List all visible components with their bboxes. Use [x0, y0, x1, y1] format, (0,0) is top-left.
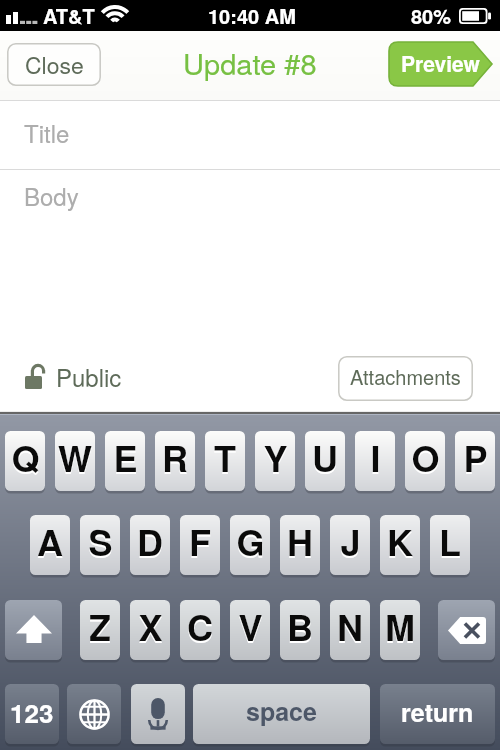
button[interactable]: Dictate — [131, 684, 185, 744]
button[interactable]: R — [155, 431, 195, 491]
staticText: 123 — [10, 694, 54, 731]
button[interactable]: H — [280, 515, 320, 575]
staticText: H — [287, 517, 313, 569]
staticText: D — [137, 517, 163, 569]
button[interactable]: S — [80, 515, 120, 575]
button[interactable]: M — [380, 600, 420, 660]
button[interactable]: Public — [25, 360, 122, 394]
button[interactable]: I — [355, 431, 395, 491]
staticText: Z — [89, 600, 111, 652]
staticText: B — [287, 602, 313, 654]
staticText: T — [214, 433, 236, 485]
staticText: 80% — [411, 1, 452, 30]
staticText: T — [214, 431, 236, 483]
staticText: J — [340, 517, 361, 569]
staticText: J — [340, 515, 361, 567]
staticText: C — [187, 600, 213, 652]
button[interactable]: U — [305, 431, 345, 491]
button[interactable]: Preview — [389, 42, 492, 86]
button[interactable]: Z — [80, 600, 120, 660]
staticText: AT&T — [43, 1, 95, 30]
staticText: O — [411, 433, 440, 485]
staticText: S — [88, 515, 113, 567]
staticText: Public — [56, 359, 122, 393]
staticText: Z — [89, 602, 111, 654]
staticText: Body — [24, 178, 79, 212]
staticText: E — [113, 431, 138, 483]
staticText: L — [439, 515, 461, 567]
staticText: Attachments — [350, 362, 461, 391]
staticText: U — [312, 431, 338, 483]
staticText: W — [58, 433, 92, 485]
button[interactable]: W — [55, 431, 95, 491]
staticText: R — [162, 431, 188, 483]
staticText: F — [189, 515, 211, 567]
staticText: S — [88, 517, 113, 569]
staticText: V — [238, 600, 263, 652]
button[interactable]: C — [180, 600, 220, 660]
staticText: N — [337, 600, 363, 652]
staticText: 10:40 AM — [208, 1, 296, 30]
staticText: C — [187, 602, 213, 654]
staticText: O — [411, 431, 440, 483]
button[interactable]: E — [105, 431, 145, 491]
staticText: Q — [11, 431, 40, 483]
staticText: P — [463, 431, 488, 483]
button[interactable]: Backspace — [438, 600, 495, 660]
staticText: V — [238, 602, 263, 654]
staticText: W — [58, 431, 92, 483]
button[interactable]: N — [330, 600, 370, 660]
staticText: space — [246, 693, 317, 729]
staticText: L — [439, 517, 461, 569]
button[interactable]: O — [405, 431, 445, 491]
staticText: H — [287, 515, 313, 567]
staticText: Close — [25, 48, 84, 81]
staticText: P — [463, 433, 488, 485]
button[interactable]: B — [280, 600, 320, 660]
button[interactable]: space — [193, 684, 370, 744]
button[interactable]: A — [30, 515, 70, 575]
staticText: Q — [11, 433, 40, 485]
other: Public — [25, 365, 47, 389]
button[interactable]: Change keyboard — [67, 684, 121, 744]
staticText: X — [138, 602, 163, 654]
button[interactable]: D — [130, 515, 170, 575]
button[interactable]: Shift — [5, 600, 62, 660]
staticText: M — [385, 600, 415, 652]
button[interactable]: F — [180, 515, 220, 575]
staticText: I — [370, 433, 381, 485]
button[interactable]: Close — [7, 43, 101, 86]
staticText: B — [287, 600, 313, 652]
staticText: Y — [263, 433, 288, 485]
staticText: G — [236, 517, 265, 569]
staticText: F — [189, 517, 211, 569]
staticText: E — [113, 433, 138, 485]
staticText: K — [387, 517, 413, 569]
button[interactable]: Y — [255, 431, 295, 491]
button[interactable]: Attachments — [338, 356, 473, 401]
button[interactable]: Q — [5, 431, 45, 491]
staticText: I — [370, 431, 381, 483]
button[interactable]: return — [380, 684, 495, 744]
staticText: A — [37, 517, 63, 569]
button[interactable]: K — [380, 515, 420, 575]
staticText: G — [236, 515, 265, 567]
staticText: Update #8 — [183, 42, 317, 84]
button[interactable]: G — [230, 515, 270, 575]
button[interactable]: V — [230, 600, 270, 660]
staticText: R — [162, 433, 188, 485]
staticText: Title — [24, 115, 70, 149]
staticText: U — [312, 433, 338, 485]
staticText: return — [401, 694, 474, 730]
button[interactable]: J — [330, 515, 370, 575]
staticText: X — [138, 600, 163, 652]
staticText: Y — [263, 431, 288, 483]
button[interactable]: T — [205, 431, 245, 491]
button[interactable]: X — [130, 600, 170, 660]
staticText: N — [337, 602, 363, 654]
button[interactable]: L — [430, 515, 470, 575]
staticText: A — [37, 515, 63, 567]
button[interactable]: P — [455, 431, 495, 491]
button[interactable]: Numbers — [5, 684, 59, 744]
staticText: K — [387, 515, 413, 567]
